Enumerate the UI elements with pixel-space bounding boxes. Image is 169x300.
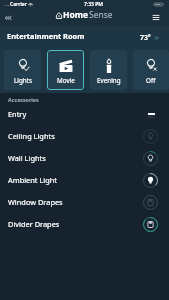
- button[interactable]: Evening: [90, 50, 127, 90]
- button[interactable]: Lights: [4, 50, 41, 90]
- staticText: 73°: [140, 33, 151, 42]
- staticText: Off: [146, 76, 156, 85]
- staticText: Home: [63, 9, 89, 21]
- staticText: Sense: [89, 9, 113, 21]
- staticText: Entertainment Room: [7, 31, 85, 41]
- button[interactable]: Window Drapes: [0, 191, 169, 213]
- staticText: Entry: [8, 109, 27, 119]
- button[interactable]: Entry: [0, 103, 169, 125]
- staticText: Ambient Light: [8, 175, 57, 185]
- staticText: Accessories: [8, 96, 39, 103]
- staticText: Evening: [97, 76, 121, 85]
- button[interactable]: Movie: [47, 50, 84, 90]
- button[interactable]: Menu: [149, 11, 162, 24]
- button[interactable]: Ambient Light: [0, 169, 169, 191]
- staticText: Wall Lights: [8, 153, 46, 163]
- staticText: Ceiling Lights: [8, 131, 55, 141]
- staticText: 7:33 PM: [84, 1, 103, 8]
- button[interactable]: Wall Lights: [0, 147, 169, 169]
- button[interactable]: 73°: [140, 33, 160, 42]
- staticText: Lights: [14, 76, 32, 85]
- button[interactable]: Back: [1, 11, 14, 24]
- button[interactable]: Off: [133, 50, 169, 90]
- button[interactable]: Ceiling Lights: [0, 125, 169, 147]
- button[interactable]: Divider Drapes: [0, 213, 169, 235]
- staticText: Divider Drapes: [8, 219, 60, 229]
- staticText: Movie: [57, 76, 75, 85]
- staticText: Window Drapes: [8, 197, 63, 207]
- staticText: Carrier: [10, 1, 27, 8]
